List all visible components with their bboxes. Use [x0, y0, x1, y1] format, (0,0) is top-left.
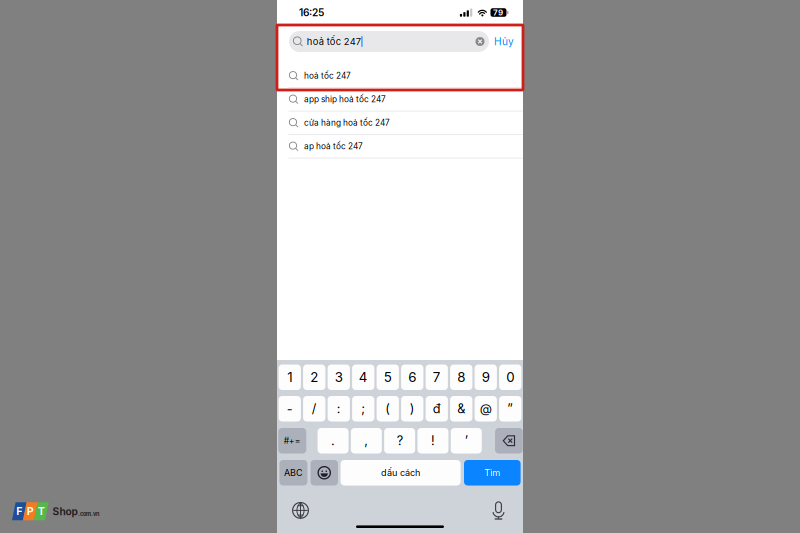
button[interactable]: dấu cách: [341, 460, 461, 485]
staticText: 6: [408, 369, 416, 385]
button[interactable]: 7: [426, 364, 448, 390]
staticText: T: [38, 505, 45, 517]
button[interactable]: 8: [450, 364, 472, 390]
staticText: ABC: [284, 467, 303, 478]
button[interactable]: 4: [352, 364, 374, 390]
button[interactable]: 0: [499, 364, 521, 390]
staticText: F: [16, 505, 22, 517]
button[interactable]: ;: [352, 396, 374, 421]
button[interactable]: :: [328, 396, 350, 421]
staticText: dấu cách: [381, 467, 420, 478]
button[interactable]: cửa hàng hoả tốc 247: [277, 111, 523, 135]
button[interactable]: hoả tốc 247: [277, 64, 523, 88]
button[interactable]: 9: [475, 364, 497, 390]
staticText: ;: [361, 401, 365, 416]
staticText: app ship hoả tốc 247: [304, 94, 386, 104]
button[interactable]: /: [303, 396, 325, 421]
staticText: 79: [493, 8, 503, 17]
staticText: .: [331, 433, 335, 448]
staticText: 3: [335, 369, 343, 385]
staticText: hoả tốc 247: [304, 71, 351, 81]
button[interactable]: Dictate: [492, 501, 505, 520]
button[interactable]: @: [475, 396, 497, 421]
staticText: ap hoả tốc 247: [304, 141, 363, 151]
staticText: 9: [482, 369, 490, 385]
staticText: ”: [507, 401, 513, 416]
button[interactable]: ”: [499, 396, 521, 421]
button[interactable]: (: [377, 396, 399, 421]
button[interactable]: ’: [451, 428, 482, 453]
staticText: ): [410, 401, 415, 416]
button[interactable]: 2: [303, 364, 325, 390]
staticText: P: [27, 505, 34, 517]
button[interactable]: ap hoả tốc 247: [277, 135, 523, 158]
staticText: !: [431, 433, 435, 448]
staticText: Tìm: [484, 467, 500, 478]
button[interactable]: !: [417, 428, 448, 453]
button[interactable]: -: [279, 396, 301, 421]
button[interactable]: Delete: [495, 428, 523, 453]
staticText: 2: [310, 369, 318, 385]
staticText: đ: [433, 401, 441, 416]
button[interactable]: 5: [377, 364, 399, 390]
staticText: (: [385, 401, 390, 416]
button[interactable]: ABC: [279, 460, 307, 485]
staticText: 16:25: [299, 6, 324, 19]
staticText: Hủy: [494, 35, 514, 48]
button[interactable]: 3: [328, 364, 350, 390]
button[interactable]: Emoji: [310, 460, 338, 485]
button[interactable]: .: [318, 428, 349, 453]
staticText: 4: [359, 369, 368, 385]
staticText: #+=: [284, 436, 301, 446]
staticText: hoả tốc 247: [307, 36, 361, 47]
button[interactable]: app ship hoả tốc 247: [277, 88, 523, 111]
staticText: Shop: [52, 505, 77, 518]
staticText: 0: [506, 369, 514, 385]
button[interactable]: ): [401, 396, 423, 421]
button[interactable]: ,: [351, 428, 382, 453]
staticText: /: [312, 401, 317, 416]
button[interactable]: 1: [279, 364, 301, 390]
staticText: &: [457, 401, 465, 416]
staticText: ?: [397, 433, 403, 448]
button[interactable]: &: [450, 396, 472, 421]
staticText: 1: [287, 369, 292, 385]
staticText: 7: [433, 369, 441, 385]
button[interactable]: 6: [401, 364, 423, 390]
button[interactable]: #+=: [278, 428, 306, 453]
staticText: ’: [465, 433, 468, 448]
staticText: .com.vn: [78, 511, 99, 517]
staticText: @: [480, 401, 492, 416]
staticText: :: [337, 401, 341, 416]
button[interactable]: Hủy: [489, 31, 519, 52]
button[interactable]: Tìm: [464, 460, 521, 485]
staticText: -: [287, 401, 293, 416]
button[interactable]: Next keyboard: [291, 501, 310, 520]
staticText: ,: [364, 433, 368, 448]
staticText: 5: [384, 369, 392, 385]
staticText: 8: [457, 369, 465, 385]
button[interactable]: đ: [426, 396, 448, 421]
staticText: cửa hàng hoả tốc 247: [304, 118, 390, 128]
button[interactable]: ?: [384, 428, 415, 453]
